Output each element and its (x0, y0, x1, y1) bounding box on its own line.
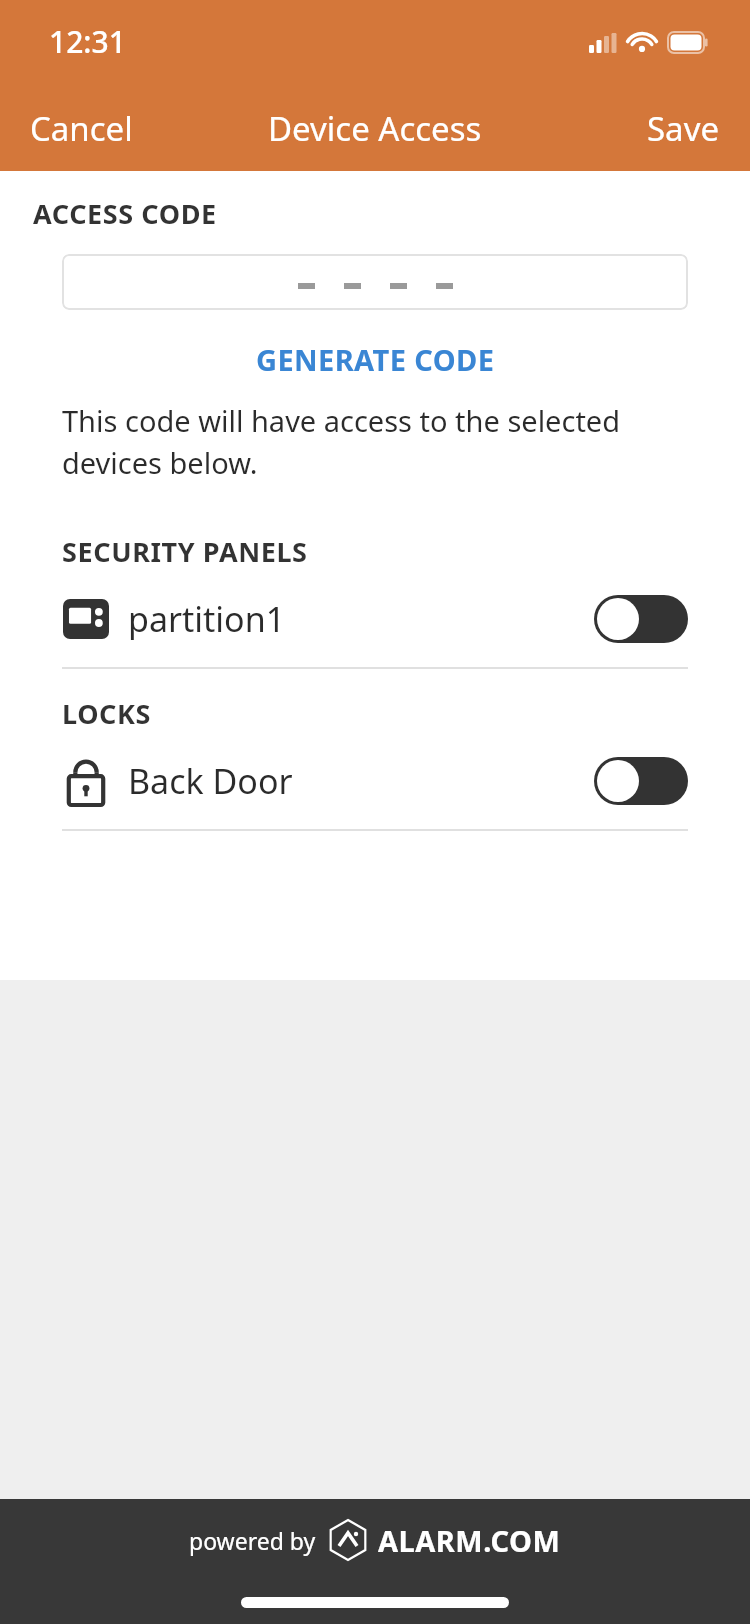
staticText: Back Door (128, 758, 293, 804)
staticText: Cancel (30, 106, 133, 151)
staticText: ALARM.COM (378, 1521, 561, 1560)
staticText: 12:31 (49, 21, 126, 62)
button[interactable]: Security panel (0, 570, 750, 667)
button[interactable]: Toggle device access (594, 595, 688, 643)
button[interactable] (62, 254, 688, 310)
staticText: Save (647, 106, 720, 151)
other: Lock (66, 757, 106, 805)
staticText: partition1 (128, 596, 286, 642)
button[interactable]: Toggle device access (594, 757, 688, 805)
staticText: GENERATE CODE (256, 340, 495, 379)
staticText: This code will have access to the select… (62, 401, 676, 482)
button[interactable]: GENERATE CODE (236, 332, 515, 387)
staticText: SECURITY PANELS (62, 533, 308, 570)
button[interactable]: Save (617, 90, 750, 167)
staticText: powered by (189, 1525, 316, 1556)
button[interactable]: Cancel (0, 90, 163, 167)
staticText: ACCESS CODE (33, 195, 217, 232)
staticText: LOCKS (62, 695, 152, 732)
staticText: Device Access (268, 106, 482, 151)
button[interactable]: Lock (0, 732, 750, 829)
other: Security panel (63, 599, 109, 639)
